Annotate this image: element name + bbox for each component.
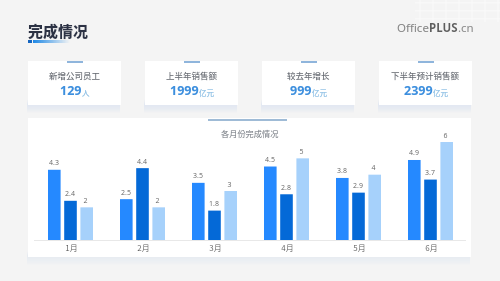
staticText: 2399 <box>404 82 433 99</box>
button[interactable]: OfficePLUS.cn <box>397 20 474 36</box>
staticText: 4.5 <box>265 155 275 165</box>
staticText: 999 <box>290 82 312 99</box>
staticText: 人 <box>82 87 90 98</box>
staticText: 2.4 <box>65 189 75 199</box>
staticText: 2月 <box>137 242 150 254</box>
staticText: 2.5 <box>121 188 131 198</box>
staticText: 4.4 <box>137 157 147 167</box>
staticText: 3月 <box>209 242 222 254</box>
staticText: 亿元 <box>433 87 448 98</box>
staticText: 2 <box>155 196 160 206</box>
staticText: 4.9 <box>409 148 419 158</box>
staticText: 新增公司员工 <box>49 69 101 81</box>
button[interactable]: 各月份完成情况 <box>28 118 471 257</box>
staticText: 2.8 <box>281 183 291 193</box>
staticText: 4月 <box>281 242 294 254</box>
staticText: 3.8 <box>337 166 347 176</box>
button[interactable]: 上半年销售额 <box>145 61 238 105</box>
staticText: 4.3 <box>49 158 59 168</box>
staticText: 5 <box>299 147 304 157</box>
staticText: 1.8 <box>209 199 219 209</box>
staticText: 3.5 <box>193 171 203 181</box>
staticText: 3.7 <box>425 168 435 178</box>
staticText: 1月 <box>65 242 78 254</box>
staticText: 4 <box>371 163 376 173</box>
staticText: 6 <box>443 131 448 141</box>
staticText: 2 <box>83 196 88 206</box>
staticText: 完成情况 <box>28 20 89 42</box>
staticText: 2.9 <box>353 181 363 191</box>
staticText: 上半年销售额 <box>166 69 218 81</box>
button[interactable]: 新增公司员工 <box>28 61 121 105</box>
staticText: 1999 <box>170 82 199 99</box>
staticText: 5月 <box>353 242 366 254</box>
staticText: 6月 <box>425 242 438 254</box>
staticText: 亿元 <box>312 87 327 98</box>
staticText: 129 <box>60 82 82 99</box>
staticText: 各月份完成情况 <box>221 127 279 139</box>
button[interactable]: 下半年预计销售额 <box>379 61 472 105</box>
staticText: 较去年增长 <box>287 69 330 81</box>
staticText: 亿元 <box>199 87 214 98</box>
button[interactable]: 较去年增长 <box>262 61 355 105</box>
staticText: 3 <box>227 180 232 190</box>
staticText: 下半年预计销售额 <box>391 69 460 81</box>
staticText: PLUS <box>429 20 458 36</box>
staticText: .cn <box>458 20 474 36</box>
staticText: Office <box>397 20 429 36</box>
